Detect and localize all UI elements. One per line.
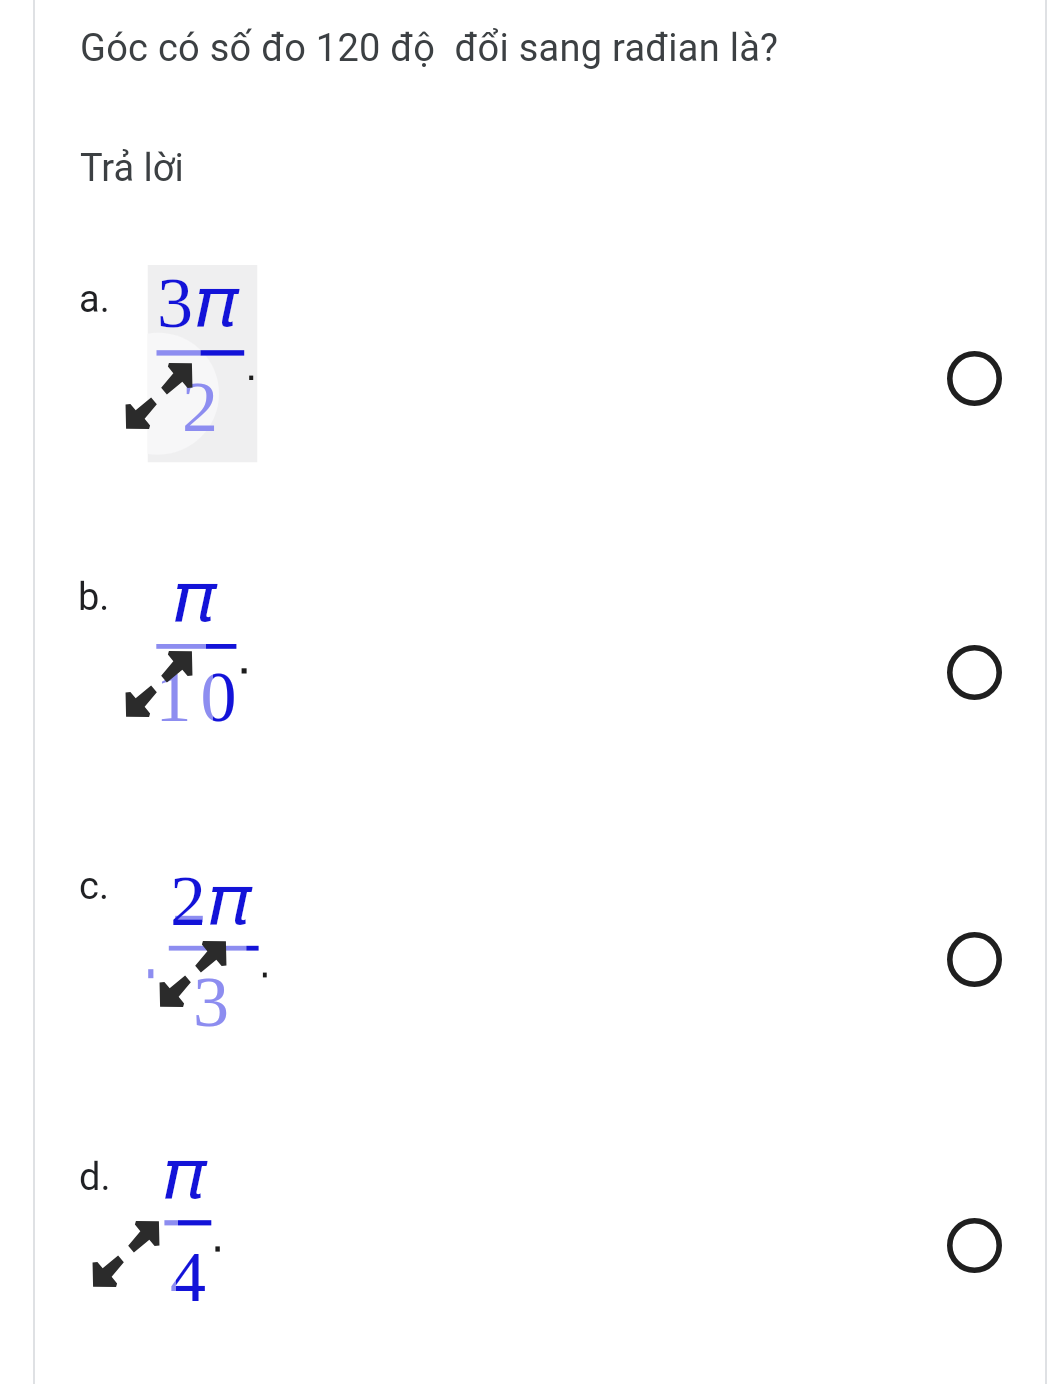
button[interactable]: Chọn đáp án	[947, 351, 1002, 406]
button[interactable]: Đáp án c	[34, 832, 1045, 1062]
staticText: 10	[151, 657, 241, 737]
staticText: 4	[176, 1237, 208, 1317]
staticText: 2𝜋	[170, 861, 257, 941]
button[interactable]: Phóng to công thức	[159, 940, 227, 1008]
staticText: Góc có số đo 120 độ đổi sang rađian là?	[80, 26, 779, 71]
button[interactable]: Chọn đáp án	[947, 645, 1002, 700]
staticText: Trả lời	[80, 146, 184, 191]
staticText: b.	[78, 575, 110, 620]
staticText: 𝜋	[175, 564, 222, 636]
staticText: d.	[79, 1155, 111, 1200]
staticText: 10	[213, 657, 241, 737]
button[interactable]: Chọn đáp án	[947, 1218, 1002, 1273]
button[interactable]: Phóng to công thức	[125, 650, 193, 718]
staticText: 3𝜋	[157, 263, 244, 343]
staticText: 4	[168, 1237, 208, 1317]
button[interactable]: Đáp án a	[34, 250, 1045, 480]
button[interactable]: Chọn đáp án	[947, 932, 1002, 987]
staticText: c.	[79, 864, 109, 909]
button[interactable]: Đáp án d	[34, 1118, 1045, 1348]
button[interactable]: Đáp án b	[34, 545, 1045, 775]
button[interactable]: Phóng to công thức	[92, 1220, 160, 1288]
staticText: 𝜋	[165, 1141, 212, 1213]
button[interactable]: Phóng to công thức	[125, 362, 193, 430]
staticText: a.	[79, 277, 110, 322]
staticText: 2	[180, 367, 220, 447]
staticText: 3	[191, 962, 231, 1042]
